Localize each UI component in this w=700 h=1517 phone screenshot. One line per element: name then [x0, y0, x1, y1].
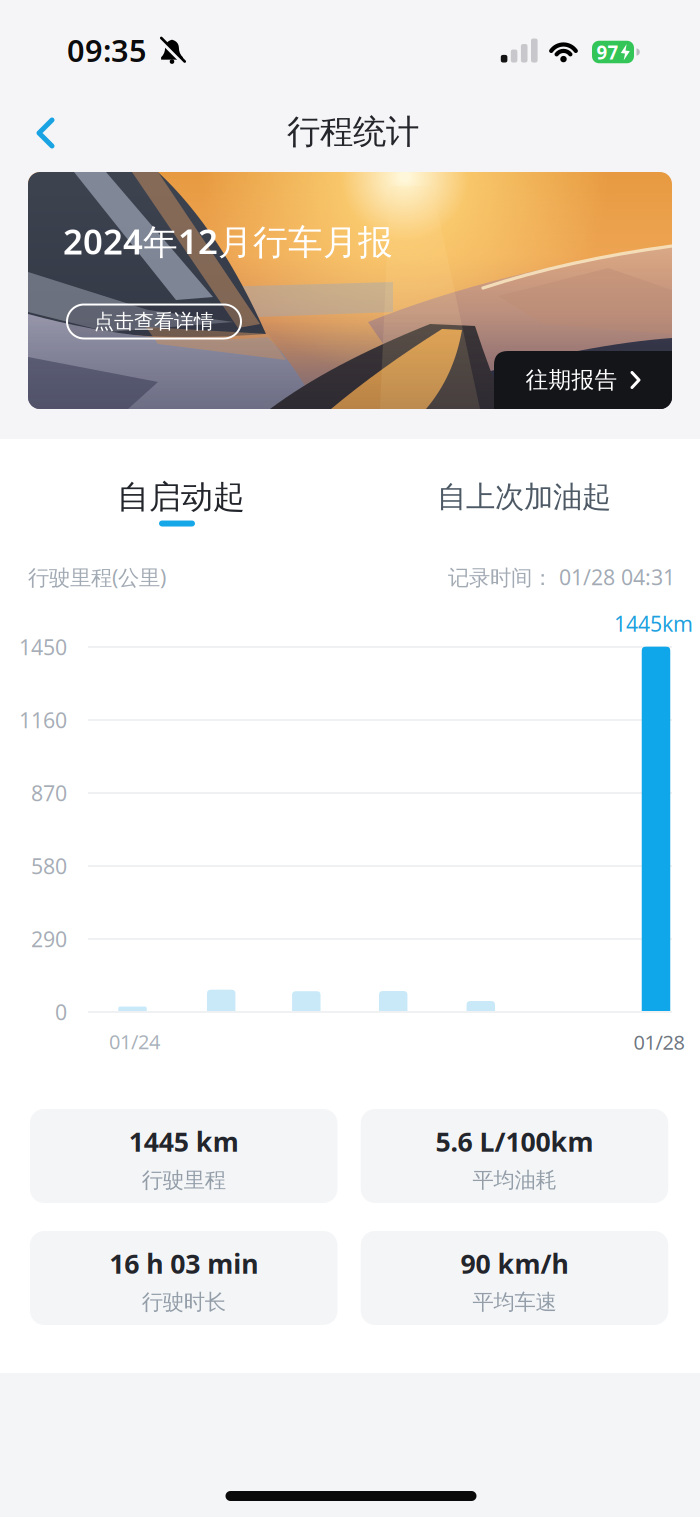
staticText: 01/24	[109, 1028, 160, 1055]
staticText: 2024年12月行车月报	[63, 218, 393, 264]
staticText: 5.6 L/100km	[435, 1124, 593, 1159]
staticText: 平均油耗	[472, 1167, 556, 1193]
staticText: 1445km	[614, 609, 693, 638]
staticText: 自上次加油起	[437, 479, 611, 515]
staticText: 01/28	[633, 1029, 684, 1055]
staticText: 580	[31, 852, 67, 880]
staticText: 行程统计	[287, 111, 419, 152]
staticText: 行驶时长	[142, 1289, 226, 1315]
staticText: 自启动起	[117, 477, 245, 517]
button[interactable]: 往期报告	[494, 351, 672, 409]
staticText: 16 h 03 min	[109, 1246, 258, 1281]
button[interactable]: 自启动起	[91, 467, 271, 527]
staticText: 往期报告	[525, 366, 617, 394]
staticText: 97	[596, 40, 618, 65]
staticText: 平均车速	[472, 1289, 556, 1315]
staticText: 1445 km	[129, 1124, 239, 1159]
button[interactable]: 2024年12月行车月报	[28, 172, 672, 409]
staticText: 0	[55, 998, 67, 1026]
staticText: 记录时间： 01/28 04:31	[448, 563, 675, 591]
button[interactable]: Back	[32, 116, 66, 150]
staticText: 行驶里程	[142, 1167, 226, 1193]
staticText: 行驶里程(公里)	[28, 563, 166, 591]
staticText: 290	[31, 925, 67, 953]
staticText: 09:35	[67, 30, 147, 70]
button[interactable]: 自上次加油起	[437, 479, 611, 515]
staticText: 870	[31, 779, 67, 807]
staticText: 90 km/h	[460, 1246, 568, 1281]
staticText: 点击查看详情	[94, 309, 214, 334]
staticText: 1160	[19, 706, 67, 734]
button[interactable]: 点击查看详情	[66, 303, 242, 339]
staticText: 1450	[19, 633, 67, 661]
